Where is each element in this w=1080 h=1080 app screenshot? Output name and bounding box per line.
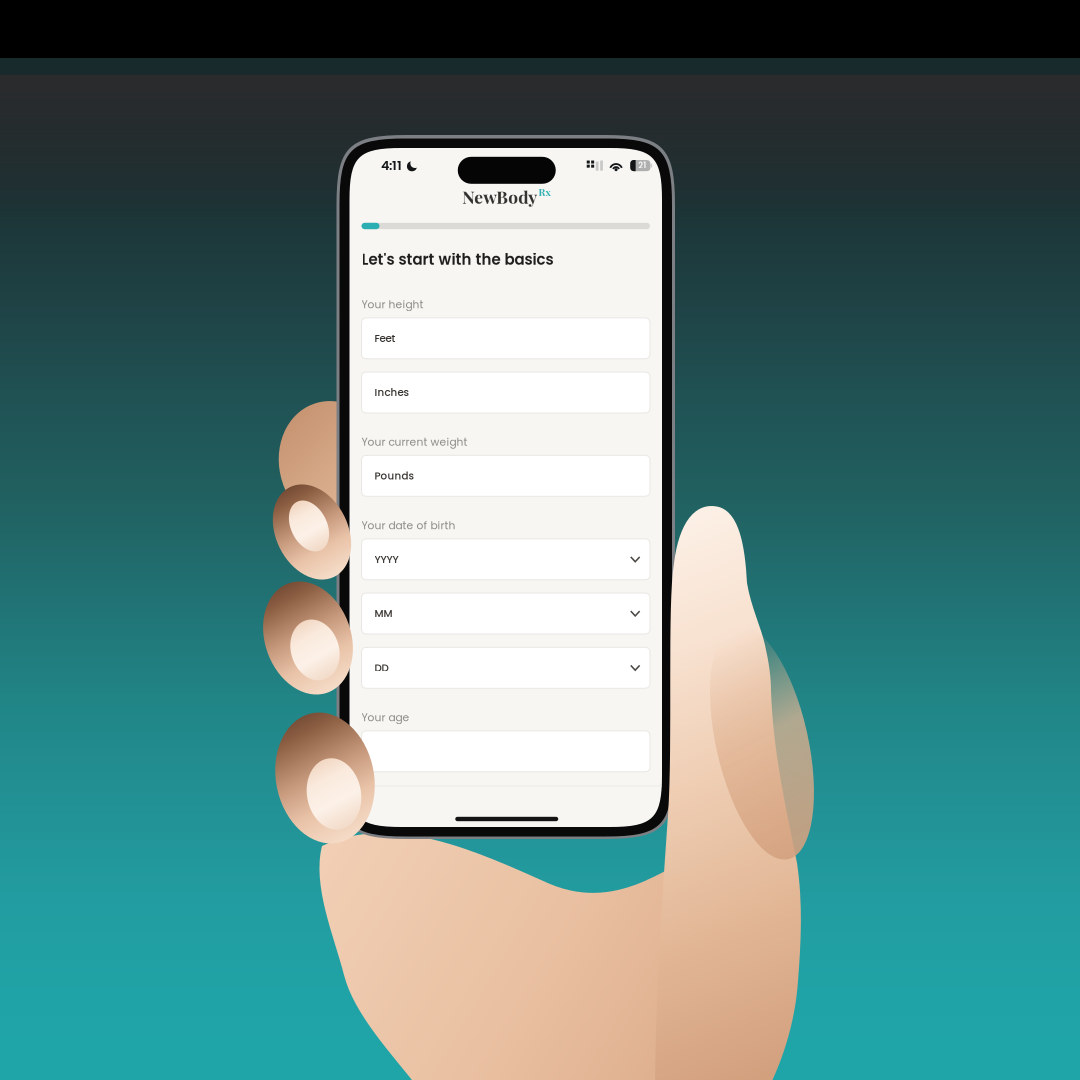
staticText: DD [374,661,388,675]
button[interactable] [361,731,650,772]
button[interactable]: Feet [361,318,650,359]
button[interactable]: YYYY [361,539,650,580]
staticText: Your current weight [361,434,467,449]
button[interactable]: DD [361,647,650,688]
staticText: Your age [361,710,409,725]
staticText: Feet [374,331,395,345]
staticText: Your height [361,297,423,312]
staticText: NewBody [462,185,537,208]
button[interactable]: Inches [361,372,650,413]
button[interactable]: Pounds [361,455,650,496]
button[interactable]: MM [361,593,650,634]
staticText: MM [374,606,392,621]
staticText: Let's start with the basics [361,249,553,270]
staticText: Rx [538,185,550,198]
staticText: 4:11 [381,157,402,174]
staticText: Pounds [374,469,413,483]
staticText: 21 [638,160,646,171]
staticText: YYYY [374,552,398,566]
staticText: Your date of birth [361,518,455,533]
staticText: Inches [374,385,408,400]
